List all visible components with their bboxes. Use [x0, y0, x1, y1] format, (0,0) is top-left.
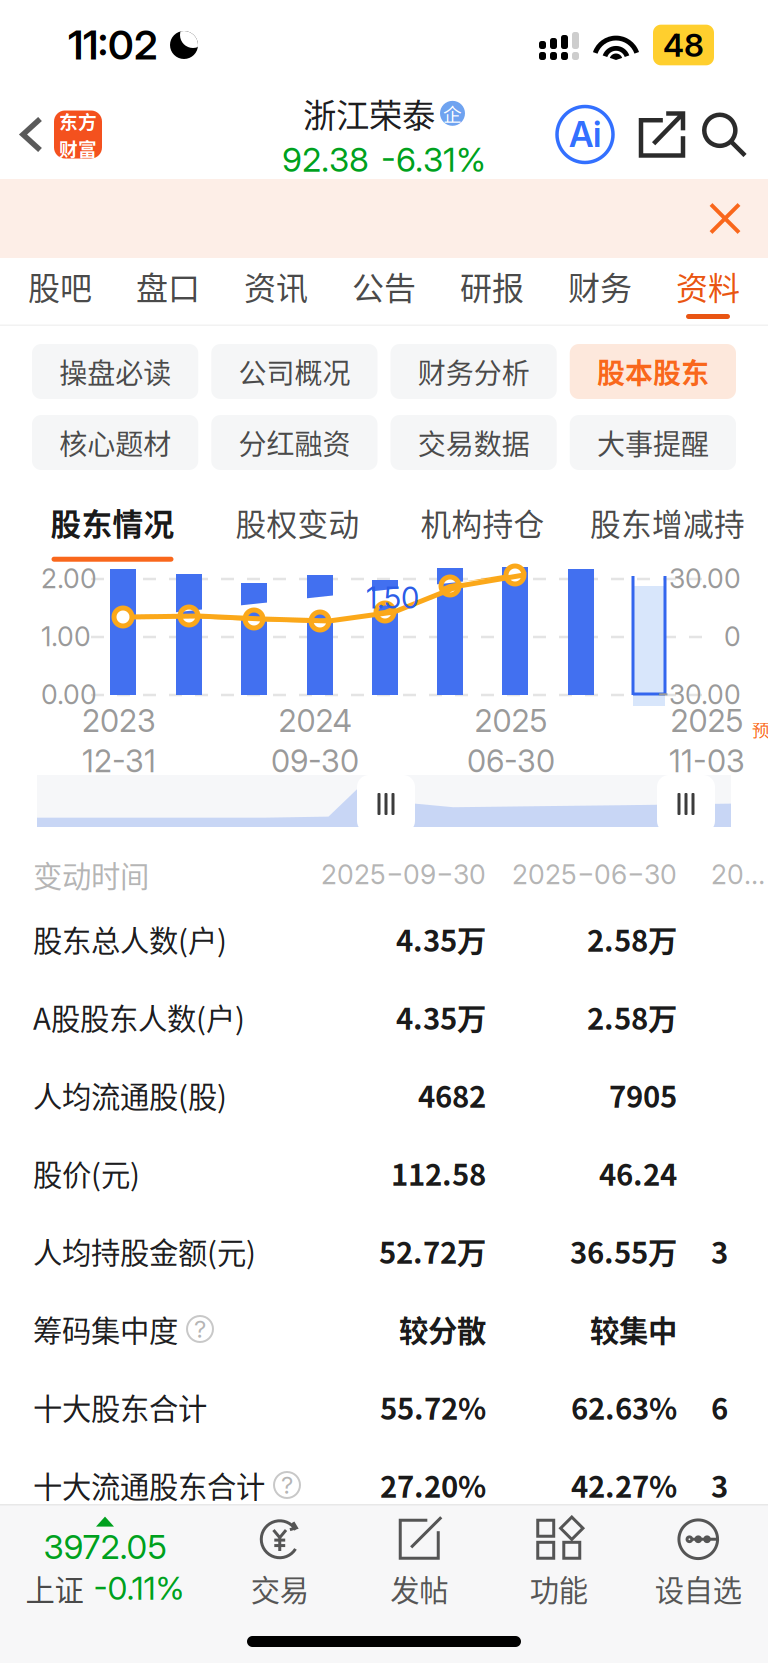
staticText: 股本股东 — [597, 351, 709, 392]
staticText: 3 — [711, 1464, 728, 1506]
staticText: 较集中 — [590, 1308, 677, 1350]
button[interactable]: 股本股东 — [570, 344, 736, 399]
button[interactable]: Back — [0, 96, 102, 172]
staticText: 2024 — [278, 702, 351, 739]
staticText: 3 — [711, 1230, 728, 1272]
staticText: 11:02 — [68, 21, 158, 69]
staticText: 股东增减持 — [590, 500, 745, 545]
staticText: 预 — [752, 716, 768, 741]
staticText: A股股东人数(户) — [33, 996, 245, 1038]
staticText: 变动时间 — [33, 853, 149, 896]
button[interactable]: Share — [621, 101, 703, 167]
staticText: 0 — [724, 620, 741, 653]
staticText: 企 — [443, 100, 462, 127]
button[interactable]: 公告 — [330, 258, 438, 326]
staticText: 分红融资 — [238, 422, 350, 463]
button[interactable]: 核心题材 — [32, 415, 198, 470]
staticText: 股东总人数(户) — [33, 918, 227, 960]
button[interactable]: 交易数据 — [390, 415, 557, 470]
staticText: 设自选 — [655, 1567, 742, 1610]
staticText: ? — [281, 1470, 293, 1499]
staticText: 财务分析 — [418, 351, 530, 392]
button[interactable]: 设自选 — [628, 1510, 768, 1610]
staticText: 06-30 — [467, 742, 555, 780]
staticText: 人均流通股(股) — [33, 1074, 227, 1116]
staticText: 6 — [711, 1386, 728, 1428]
staticText: 112.58 — [391, 1152, 486, 1194]
staticText: 12-31 — [82, 742, 156, 780]
staticText: 52.72万 — [379, 1230, 486, 1272]
staticText: 操盘必读 — [59, 351, 171, 392]
staticText: 1.50 — [366, 580, 419, 615]
staticText: 3972.05 — [43, 1527, 166, 1567]
button[interactable]: 股权变动 — [205, 478, 390, 574]
button[interactable]: 财务 — [546, 258, 654, 326]
button[interactable]: 资料 — [654, 258, 762, 326]
staticText: 55.72% — [380, 1386, 486, 1428]
button[interactable]: 研报 — [438, 258, 546, 326]
button[interactable]: Search — [703, 101, 745, 167]
staticText: 十大流通股东合计 — [33, 1464, 265, 1506]
staticText: 上证 — [25, 1567, 83, 1609]
button[interactable]: 公司概况 — [211, 344, 377, 399]
staticText: 11-03 — [669, 742, 745, 780]
staticText: 2025 — [474, 702, 547, 739]
staticText: -30.00 — [657, 678, 741, 711]
staticText: 27.20% — [380, 1464, 486, 1506]
button[interactable]: 资讯 — [222, 258, 330, 326]
button[interactable]: 分红融资 — [211, 415, 377, 470]
staticText: 92.38 — [282, 139, 369, 180]
staticText: 东 — [59, 107, 78, 134]
staticText: 股权变动 — [235, 500, 359, 545]
staticText: 46.24 — [599, 1152, 677, 1194]
button[interactable]: 3972.05 — [0, 1511, 210, 1609]
button[interactable]: 发帖 — [349, 1510, 489, 1610]
staticText: 30.00 — [669, 562, 741, 595]
staticText: 2023 — [82, 702, 156, 739]
button[interactable]: AI assistant — [549, 96, 621, 172]
staticText: 62.63% — [571, 1386, 677, 1428]
staticText: 研报 — [460, 263, 524, 309]
button[interactable]: 操盘必读 — [32, 344, 198, 399]
staticText: 人均持股金额(元) — [33, 1230, 256, 1272]
staticText: -6.31% — [381, 139, 486, 180]
staticText: 财务 — [568, 263, 632, 309]
staticText: 机构持仓 — [420, 500, 544, 545]
staticText: 09-30 — [271, 742, 359, 780]
staticText: 公告 — [352, 263, 416, 309]
staticText: 交易 — [251, 1567, 309, 1610]
button[interactable]: 股东增减持 — [575, 478, 760, 574]
button[interactable]: Close banner — [699, 192, 751, 244]
staticText: 0.00 — [41, 678, 97, 711]
button[interactable]: 机构持仓 — [390, 478, 575, 574]
staticText: 4.35万 — [396, 918, 486, 960]
staticText: 公司概况 — [238, 351, 350, 392]
staticText: 1.00 — [41, 620, 91, 653]
staticText: 股东情况 — [50, 500, 174, 545]
staticText: 较分散 — [399, 1308, 486, 1350]
button[interactable]: 财务分析 — [390, 344, 557, 399]
button[interactable]: 交易 — [210, 1510, 349, 1610]
staticText: 4682 — [418, 1074, 486, 1116]
staticText: 十大股东合计 — [33, 1386, 207, 1428]
staticText: 2025 — [711, 858, 768, 891]
staticText: 大事提醒 — [597, 422, 709, 463]
staticText: Ai — [569, 113, 601, 155]
staticText: 盘口 — [136, 263, 200, 309]
button[interactable]: 股吧 — [6, 258, 114, 326]
staticText: 筹码集中度 — [33, 1308, 178, 1350]
button[interactable]: 功能 — [489, 1510, 628, 1610]
staticText: 36.55万 — [570, 1230, 677, 1272]
staticText: 发帖 — [390, 1567, 448, 1610]
staticText: 42.27% — [571, 1464, 677, 1506]
staticText: 2025−06−30 — [512, 858, 677, 891]
staticText: 方 — [78, 107, 97, 134]
staticText: 2.00 — [41, 562, 97, 595]
button[interactable]: 盘口 — [114, 258, 222, 326]
staticText: 4.35万 — [396, 996, 486, 1038]
staticText: 2.58万 — [587, 996, 677, 1038]
staticText: 7905 — [609, 1074, 677, 1116]
staticText: 2025 — [670, 702, 743, 739]
button[interactable]: 大事提醒 — [570, 415, 736, 470]
button[interactable]: 股东情况 — [20, 478, 205, 574]
